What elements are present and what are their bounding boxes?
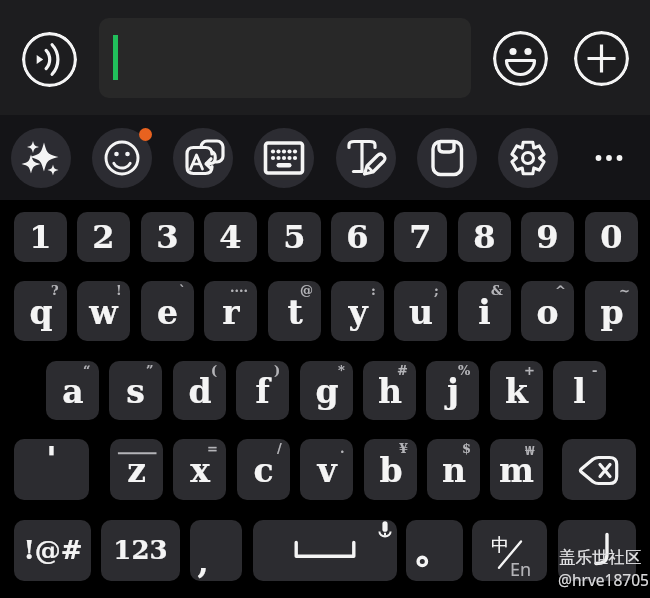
button[interactable]: Switch language (472, 520, 547, 581)
button[interactable]: u (394, 281, 447, 341)
button[interactable]: AI assist (11, 128, 71, 188)
button[interactable]: Space (253, 520, 397, 581)
button[interactable]: Period (406, 520, 463, 581)
button[interactable]: 7 (394, 212, 447, 262)
button[interactable]: j (426, 361, 479, 420)
button[interactable]: m (490, 439, 543, 500)
staticText: 6 (346, 218, 369, 256)
button[interactable]: 5 (268, 212, 321, 262)
staticText: @hrve18705 (558, 569, 649, 590)
button[interactable]: Enter (558, 520, 636, 581)
button[interactable]: b (364, 439, 417, 500)
staticText: p (600, 293, 624, 332)
button[interactable]: s (109, 361, 162, 420)
staticText: y (348, 293, 368, 332)
button[interactable]: 6 (331, 212, 384, 262)
staticText: 123 (113, 535, 168, 566)
button[interactable]: ' (14, 439, 89, 500)
staticText: 4 (219, 218, 242, 256)
staticText: * (338, 363, 345, 378)
staticText: w (89, 293, 118, 332)
button[interactable]: 0 (585, 212, 638, 262)
button[interactable]: x (173, 439, 226, 500)
button[interactable]: Emoji (493, 31, 548, 86)
button[interactable]: Stickers (92, 128, 152, 188)
staticText: 中 (491, 534, 509, 557)
staticText: 1 (29, 218, 52, 256)
staticText: !@# (23, 535, 83, 566)
button[interactable]: n (427, 439, 480, 500)
button[interactable]: Translate (173, 128, 233, 188)
button[interactable]: o (521, 281, 574, 341)
button[interactable]: 9 (521, 212, 574, 262)
staticText: r (222, 293, 240, 332)
button[interactable]: , (190, 520, 242, 581)
staticText: 盖乐世社区 (559, 547, 642, 568)
staticText: & (491, 283, 503, 298)
button[interactable]: f (236, 361, 289, 420)
staticText: ¥ (399, 441, 409, 456)
staticText: $ (462, 441, 472, 456)
button[interactable]: 4 (204, 212, 257, 262)
button[interactable]: r (204, 281, 257, 341)
staticText: ( (211, 363, 218, 378)
button[interactable]: z (110, 439, 163, 500)
button[interactable]: Clipboard (417, 128, 477, 188)
staticText: @ (300, 283, 313, 298)
staticText: h (378, 372, 402, 411)
staticText: “ (83, 363, 91, 378)
button[interactable]: p (585, 281, 638, 341)
staticText: a (62, 372, 84, 411)
button[interactable]: i (458, 281, 511, 341)
button[interactable]: 2 (77, 212, 130, 262)
staticText: ? (51, 283, 59, 298)
staticText: 8 (473, 218, 496, 256)
button[interactable]: t (268, 281, 321, 341)
button[interactable]: q (14, 281, 67, 341)
staticText: g (315, 372, 339, 411)
button[interactable]: l (553, 361, 606, 420)
button[interactable]: !@# (14, 520, 91, 581)
staticText: 0 (600, 218, 623, 256)
staticText: f (255, 372, 270, 411)
staticText: 5 (283, 218, 306, 256)
button[interactable]: Add attachment (574, 31, 629, 86)
button[interactable]: 8 (458, 212, 511, 262)
button[interactable]: v (300, 439, 353, 500)
staticText: ! (116, 283, 122, 298)
staticText: 2 (92, 218, 115, 256)
button[interactable]: w (77, 281, 130, 341)
button[interactable]: 3 (141, 212, 194, 262)
button[interactable]: y (331, 281, 384, 341)
button[interactable]: More options (579, 128, 639, 188)
staticText: z (127, 451, 146, 490)
staticText: En (510, 557, 532, 581)
staticText: n (442, 451, 466, 490)
staticText: ^ (555, 283, 566, 298)
button[interactable]: h (363, 361, 416, 420)
button[interactable]: g (300, 361, 353, 420)
staticText: e (157, 293, 178, 332)
staticText: s (126, 372, 145, 411)
staticText: q (29, 293, 53, 332)
button[interactable]: Settings (498, 128, 558, 188)
staticText: 3 (156, 218, 179, 256)
button[interactable]: 1 (14, 212, 67, 262)
staticText: : (371, 283, 376, 298)
button[interactable]: d (173, 361, 226, 420)
button[interactable]: a (46, 361, 99, 420)
staticText: / (277, 441, 282, 456)
button[interactable]: k (490, 361, 543, 420)
button[interactable]: Voice input (22, 32, 77, 87)
staticText: = (207, 441, 218, 456)
staticText: k (505, 372, 528, 411)
button[interactable] (99, 18, 471, 98)
button[interactable]: c (237, 439, 290, 500)
button[interactable]: Backspace (562, 439, 636, 500)
button[interactable]: 123 (101, 520, 180, 581)
button[interactable]: Handwriting (336, 128, 396, 188)
staticText: t (287, 293, 303, 332)
staticText: , (197, 543, 209, 581)
button[interactable]: e (141, 281, 194, 341)
button[interactable]: Keyboard layout (254, 128, 314, 188)
